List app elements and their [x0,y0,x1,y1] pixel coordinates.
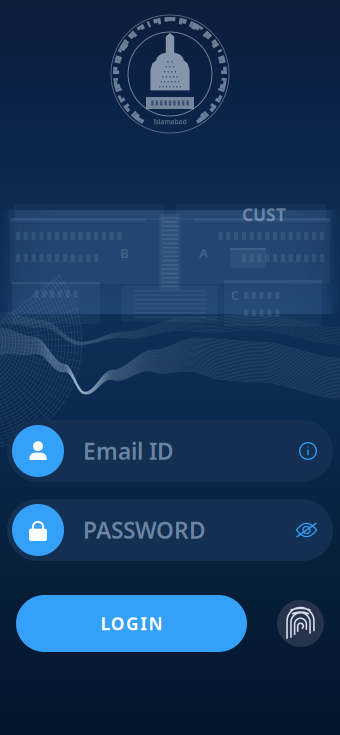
staticText: Email ID [83,436,174,466]
button[interactable]: Fingerprint login [277,600,324,647]
staticText: A [199,244,208,262]
button[interactable]: Email ID [7,420,333,482]
staticText: CUST [242,203,286,226]
staticText: LOGIN [100,612,163,635]
staticText: Islamabad [153,117,186,126]
staticText: PASSWORD [83,515,206,545]
staticText: B [120,244,129,262]
button[interactable]: LOGIN [16,595,247,652]
staticText: C [231,287,239,303]
button[interactable]: PASSWORD [7,499,333,561]
